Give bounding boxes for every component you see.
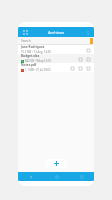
button[interactable]: Action xyxy=(77,56,83,62)
button[interactable]: Action xyxy=(85,65,91,71)
staticText: 1.1 MB • 27 Jul 09:02 xyxy=(25,68,51,72)
staticText: Archives xyxy=(48,30,65,35)
button[interactable]: Action xyxy=(77,65,83,71)
staticText: Jane Rodriguez xyxy=(21,45,45,49)
button[interactable]: Search xyxy=(18,37,94,44)
button[interactable]: More options xyxy=(84,29,91,36)
button[interactable]: Recents xyxy=(69,172,94,181)
button[interactable]: Menu xyxy=(21,28,29,36)
staticText: Notes.pdf xyxy=(21,63,37,67)
staticText: Search xyxy=(21,39,31,43)
button[interactable]: Jane Rodriguez xyxy=(18,45,94,54)
button[interactable]: Add xyxy=(45,159,67,168)
button[interactable]: Back xyxy=(18,172,44,181)
staticText: Budget.xlsx xyxy=(21,54,40,58)
staticText: 15.2 MB • 13 Aug, 14:30 xyxy=(21,50,51,54)
button[interactable]: Action xyxy=(69,65,75,71)
button[interactable]: Notes.pdf xyxy=(18,63,94,72)
button[interactable]: Budget.xlsx xyxy=(18,54,94,63)
button[interactable]: Action xyxy=(85,56,91,62)
button[interactable]: Action xyxy=(85,47,91,53)
button[interactable]: Home xyxy=(44,172,69,181)
staticText: 842 KB • 9 Aug 12:10 xyxy=(25,59,51,63)
